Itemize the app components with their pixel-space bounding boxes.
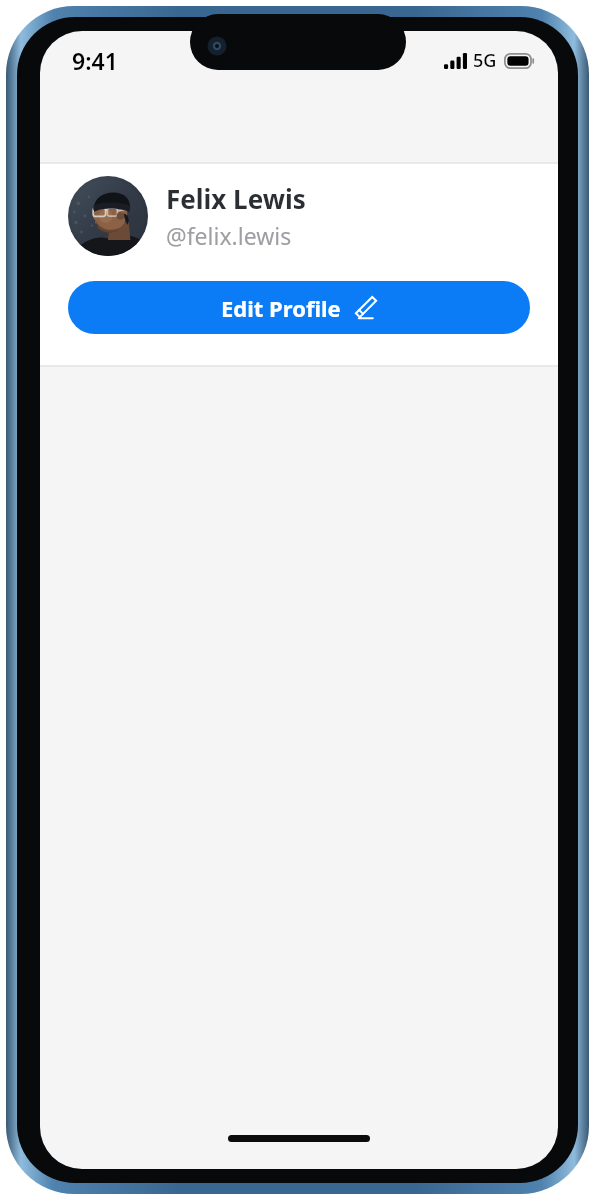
staticText: Edit Profile — [221, 293, 341, 323]
button[interactable]: Edit Profile — [68, 281, 530, 334]
staticText: @felix.lewis — [166, 220, 292, 251]
other: Edit — [354, 296, 378, 320]
staticText: 5G — [473, 48, 497, 73]
staticText: Felix Lewis — [166, 181, 306, 216]
staticText: 9:41 — [72, 45, 118, 76]
